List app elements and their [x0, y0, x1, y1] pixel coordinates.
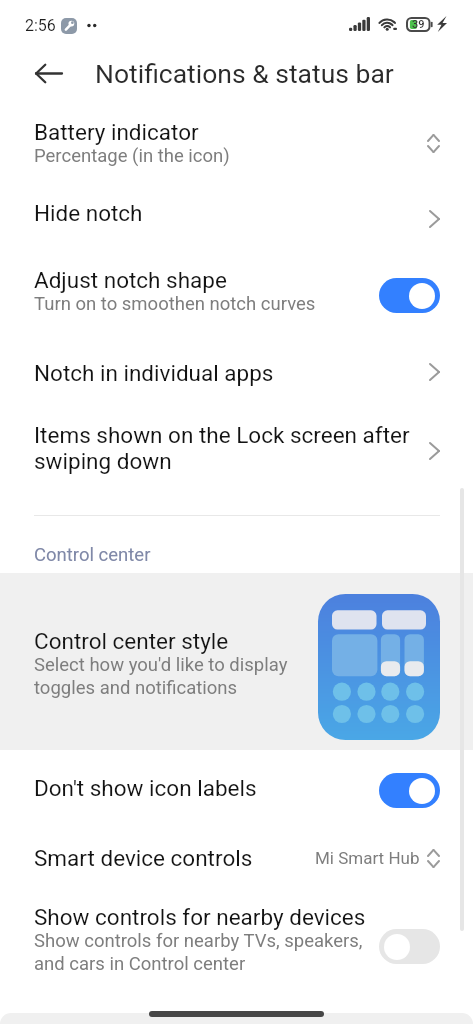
staticText: Notch in individual apps: [34, 360, 274, 386]
staticText: Smart device controls: [34, 845, 253, 871]
button[interactable]: Toggle: [379, 773, 440, 808]
button[interactable]: Toggle: [379, 278, 440, 313]
staticText: 2:56: [25, 16, 56, 35]
button[interactable]: Show controls for nearby devices: [0, 888, 473, 991]
staticText: 39: [412, 18, 425, 31]
staticText: Show controls for nearby devices: [34, 904, 366, 930]
staticText: Mi Smart Hub: [315, 848, 420, 868]
button[interactable]: Adjust notch shape: [0, 245, 473, 337]
staticText: Notifications & status bar: [95, 58, 394, 89]
button[interactable]: Notch in individual apps: [0, 342, 473, 404]
button[interactable]: Hide notch: [0, 179, 473, 247]
staticText: Items shown on the Lock screen after swi…: [34, 422, 410, 474]
button[interactable]: Smart device controls: [0, 827, 473, 889]
button[interactable]: Back: [24, 49, 72, 97]
staticText: Control center style: [34, 628, 229, 654]
staticText: Control center: [34, 544, 151, 566]
staticText: Don't show icon labels: [34, 775, 257, 801]
staticText: Adjust notch shape: [34, 267, 227, 293]
button[interactable]: Don't show icon labels: [0, 757, 473, 819]
button[interactable]: Battery indicator: [0, 102, 473, 183]
staticText: Hide notch: [34, 200, 143, 226]
staticText: Select how you'd like to display toggles…: [34, 654, 288, 699]
staticText: Show controls for nearby TVs, speakers, …: [34, 930, 363, 975]
button[interactable]: Items shown on the Lock screen after swi…: [0, 406, 473, 489]
staticText: Battery indicator: [34, 119, 199, 145]
button[interactable]: [0, 573, 473, 750]
staticText: Percentage (in the icon): [34, 145, 230, 167]
staticText: Turn on to smoothen notch curves: [34, 293, 316, 315]
button[interactable]: Toggle: [379, 929, 440, 964]
